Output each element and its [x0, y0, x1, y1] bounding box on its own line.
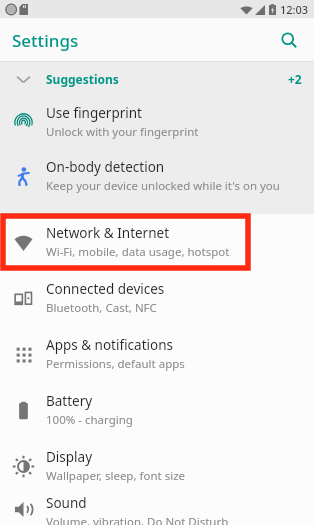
staticText: Battery [46, 392, 93, 410]
staticText: 100% - charging [46, 412, 133, 428]
button[interactable]: Sound [0, 494, 314, 525]
staticText: Settings [12, 29, 79, 52]
button[interactable]: Connected devices [0, 270, 314, 326]
staticText: Bluetooth, Cast, NFC [46, 300, 157, 316]
staticText: 12:03 [280, 2, 309, 17]
button[interactable]: Search settings [272, 23, 306, 57]
staticText: Connected devices [46, 280, 165, 298]
staticText: Apps & notifications [46, 336, 173, 354]
staticText: Wi-Fi, mobile, data usage, hotspot [46, 244, 230, 260]
button[interactable]: Battery [0, 382, 314, 438]
staticText: Display [46, 448, 93, 466]
button[interactable]: Use fingerprint [0, 95, 314, 149]
staticText: Keep your device unlocked while it's on … [46, 178, 280, 194]
button[interactable]: Network & Internet [0, 214, 314, 270]
staticText: +2 [288, 71, 302, 87]
staticText: Network & Internet [46, 224, 170, 242]
staticText: Permissions, default apps [46, 356, 185, 372]
staticText: On-body detection [46, 158, 165, 176]
button[interactable]: Apps & notifications [0, 326, 314, 382]
button[interactable]: Display [0, 438, 314, 494]
staticText: Sound [46, 494, 87, 512]
staticText: Wallpaper, sleep, font size [46, 468, 186, 484]
staticText: Suggestions [46, 71, 119, 87]
button[interactable]: Suggestions [0, 62, 314, 95]
staticText: Volume, vibration, Do Not Disturb [46, 514, 229, 525]
button[interactable]: On-body detection [0, 149, 314, 203]
staticText: Use fingerprint [46, 104, 142, 122]
staticText: Unlock with your fingerprint [46, 124, 199, 140]
